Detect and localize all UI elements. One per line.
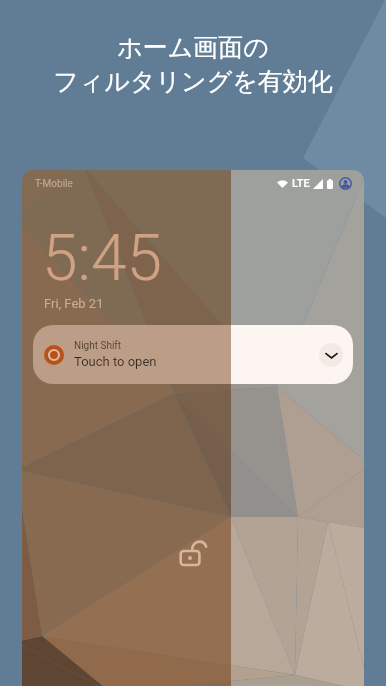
button[interactable]: Expand xyxy=(319,343,343,367)
staticText: ホーム画面の フィルタリングを有効化 xyxy=(53,32,333,98)
button[interactable]: Unlock xyxy=(176,538,212,574)
staticText: T-Mobile xyxy=(35,178,73,190)
button[interactable]: Night Shift xyxy=(33,325,353,384)
staticText: Touch to open xyxy=(74,354,157,369)
staticText: 5:45 xyxy=(42,221,162,296)
button[interactable]: Account xyxy=(339,177,352,190)
staticText: LTE xyxy=(292,177,310,190)
staticText: Night Shift xyxy=(74,340,122,352)
staticText: Fri, Feb 21 xyxy=(44,296,104,311)
